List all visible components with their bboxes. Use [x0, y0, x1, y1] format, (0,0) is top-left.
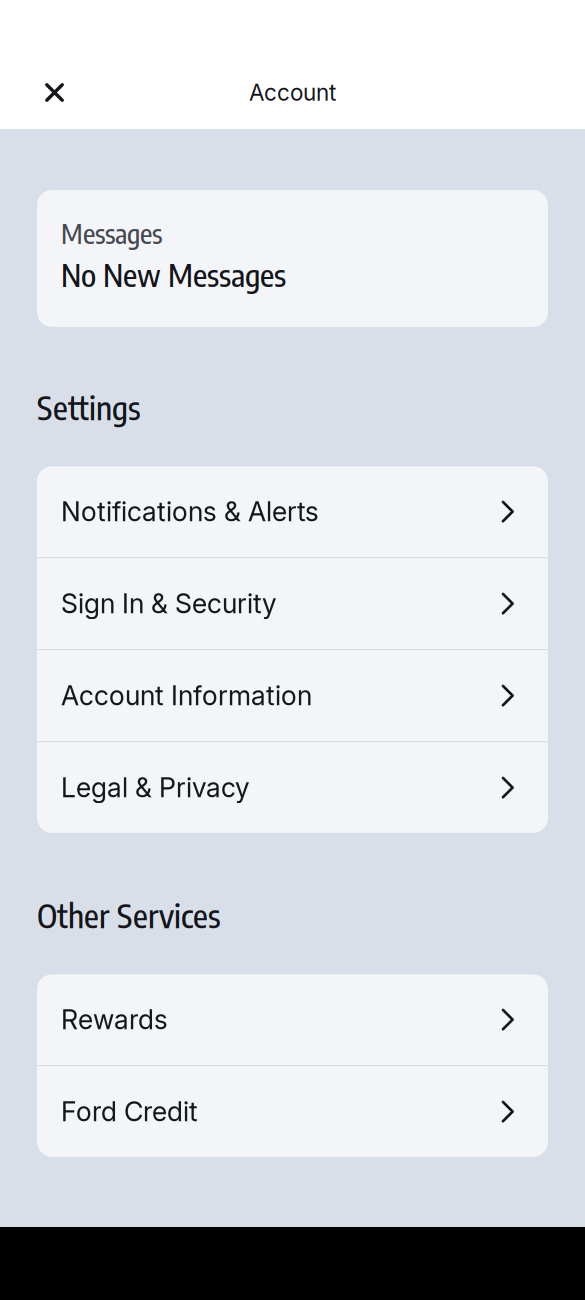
- staticText: Ford Credit: [61, 1095, 198, 1128]
- staticText: No New Messages: [61, 255, 286, 294]
- button[interactable]: Messages: [37, 190, 548, 327]
- staticText: Sign In & Security: [61, 587, 277, 620]
- staticText: Account Information: [61, 679, 312, 712]
- button[interactable]: Sign In & Security: [37, 558, 548, 650]
- button[interactable]: Close: [29, 67, 80, 118]
- button[interactable]: Notifications & Alerts: [37, 466, 548, 558]
- staticText: Other Services: [37, 895, 221, 935]
- staticText: Legal & Privacy: [61, 771, 250, 804]
- button[interactable]: Legal & Privacy: [37, 742, 548, 833]
- button[interactable]: Rewards: [37, 974, 548, 1066]
- staticText: Notifications & Alerts: [61, 495, 319, 528]
- staticText: Messages: [61, 216, 162, 250]
- button[interactable]: Ford Credit: [37, 1066, 548, 1157]
- staticText: Rewards: [61, 1003, 168, 1036]
- button[interactable]: Account Information: [37, 650, 548, 742]
- staticText: Settings: [37, 387, 141, 427]
- staticText: Account: [249, 79, 336, 106]
